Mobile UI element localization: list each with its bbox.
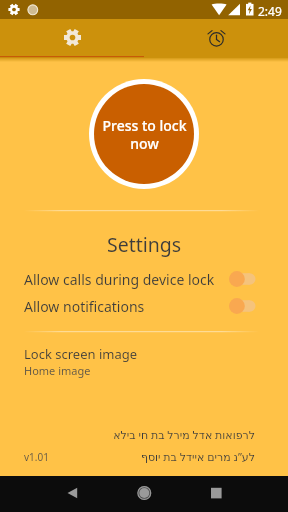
staticText: Home image — [24, 363, 91, 378]
staticText: לרפואות אדל מירל בת חי בילא — [0, 427, 255, 442]
staticText: לע”נ מרים איידל בת יוסף — [0, 449, 255, 464]
staticText: Lock screen image — [24, 345, 138, 363]
button[interactable]: Press to lock now — [94, 84, 194, 184]
staticText: Allow notifications — [24, 297, 229, 316]
staticText: Settings — [107, 231, 182, 258]
button[interactable]: Back — [48, 476, 98, 512]
staticText: 2:49 — [258, 3, 282, 19]
button[interactable]: Recents — [191, 476, 241, 512]
button[interactable]: Allow notifications — [0, 295, 288, 317]
button[interactable]: Home — [119, 476, 169, 512]
button[interactable]: Allow calls during device lock — [0, 268, 288, 290]
staticText: Allow calls during device lock — [24, 270, 229, 289]
button[interactable]: Lock screen image — [0, 341, 288, 384]
staticText: Press to lock now — [102, 116, 187, 153]
button[interactable]: Settings tab — [0, 19, 144, 58]
button[interactable]: Alarm tab — [144, 19, 288, 58]
staticText: v1.01 — [24, 450, 49, 464]
